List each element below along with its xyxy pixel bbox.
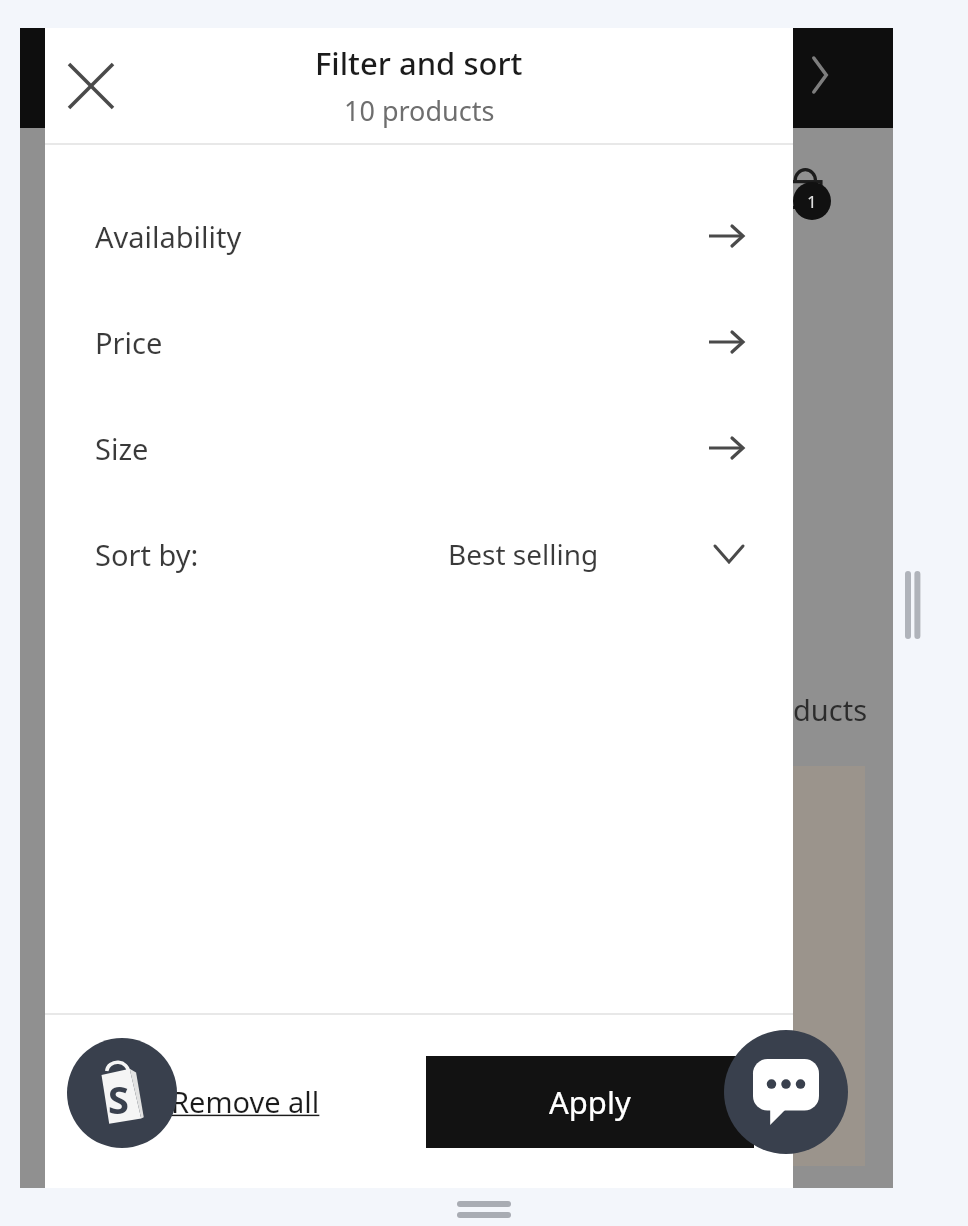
button[interactable]: Size xyxy=(45,425,793,471)
button[interactable]: Sort by: xyxy=(45,531,793,577)
staticText: S xyxy=(108,1073,129,1125)
staticText: 1 xyxy=(807,190,817,213)
button[interactable]: Remove all xyxy=(165,1072,326,1131)
staticText: 10 products xyxy=(344,92,495,129)
staticText: Best selling xyxy=(448,535,599,573)
button[interactable]: Availability xyxy=(45,213,793,259)
staticText: Price xyxy=(95,323,163,362)
staticText: Remove all xyxy=(171,1082,320,1121)
staticText: Size xyxy=(95,429,149,468)
staticText: ducts xyxy=(793,690,868,729)
staticText: Sort by: xyxy=(95,535,199,574)
button[interactable]: Close xyxy=(53,48,129,124)
button[interactable]: Chat xyxy=(724,1030,848,1154)
staticText: Availability xyxy=(95,217,242,256)
button[interactable]: Price xyxy=(45,319,793,365)
button[interactable]: Shopify xyxy=(67,1038,177,1148)
staticText: Apply xyxy=(549,1081,631,1123)
button[interactable]: Apply xyxy=(426,1056,754,1148)
staticText: Filter and sort xyxy=(315,42,523,84)
